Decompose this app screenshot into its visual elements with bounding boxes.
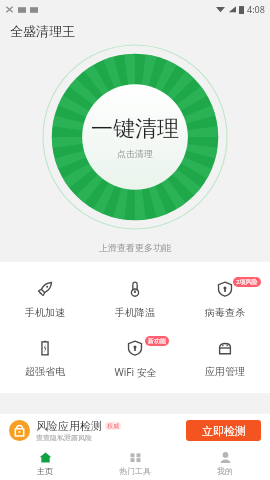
staticText: 我的 [217,466,233,476]
button[interactable]: 应用管理 [180,335,270,380]
staticText: 主页 [37,466,53,476]
staticText: 查查隐私泄露风险 [36,433,92,442]
button[interactable]: 新功能 [90,335,180,381]
staticText: 2项风险 [236,278,258,286]
staticText: 立即检测 [202,424,246,438]
staticText: 超强省电 [25,365,65,378]
staticText: 上滑查看更多功能 [99,242,171,253]
staticText: 新功能 [148,337,166,345]
staticText: 应用管理 [205,365,245,378]
staticText: 热门工具 [119,466,151,476]
button[interactable]: 手机加速 [0,276,90,321]
button[interactable]: 我的 [180,447,270,480]
button[interactable]: 2项风险 [180,276,270,321]
button[interactable]: 手机降温 [90,276,180,321]
button[interactable]: 一键清理 [42,44,228,230]
button[interactable]: 立即检测 [186,420,261,441]
button[interactable]: 热门工具 [90,447,180,480]
button[interactable]: 风险应用检测 [9,414,261,447]
staticText: 风险应用检测 [36,419,102,433]
staticText: 点击清理 [117,148,153,159]
staticText: 4:08 [247,3,265,15]
button[interactable]: 超强省电 [0,335,90,380]
staticText: 手机加速 [25,306,65,319]
button[interactable]: 主页 [0,447,90,480]
staticText: 全盛清理王 [10,23,75,39]
staticText: WiFi 安全 [114,365,157,379]
staticText: 病毒查杀 [205,306,245,319]
staticText: 权威 [107,422,119,430]
staticText: 手机降温 [115,306,155,319]
staticText: 一键清理 [91,115,179,143]
